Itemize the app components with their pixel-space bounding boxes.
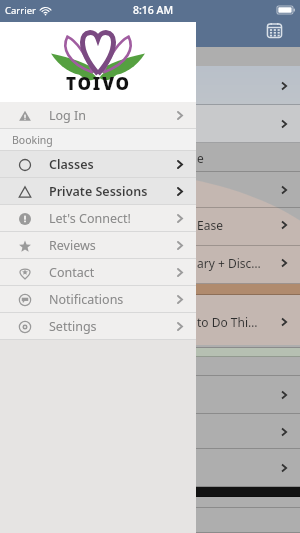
button[interactable]: Let's Connect! [0,205,196,232]
staticText: Carrier [5,4,36,17]
staticText: ary + Disc… [197,255,261,271]
button[interactable]: Settings [0,313,196,340]
button[interactable]: Reviews [0,232,196,259]
staticText: Settings [49,318,97,335]
staticText: Ease [197,217,223,233]
staticText: Log In [49,107,87,124]
staticText: Booking [12,133,53,147]
button[interactable]: Private Sessions [0,178,196,205]
button[interactable]: Log In [0,102,196,129]
staticText: 8:16 AM [133,3,174,17]
button[interactable]: Notifications [0,286,196,313]
staticText: e [197,150,204,166]
staticText: TOIVO [66,72,131,95]
staticText: Let's Connect! [49,210,131,227]
button[interactable]: Calendar [262,18,287,43]
staticText: Contact [49,264,95,281]
staticText: Notifications [49,291,124,308]
staticText: Classes [49,156,94,173]
staticText: Reviews [49,237,96,254]
staticText: to Do Thi… [197,314,258,330]
button[interactable]: Contact [0,259,196,286]
button[interactable]: Classes [0,151,196,178]
staticText: Private Sessions [49,183,148,200]
